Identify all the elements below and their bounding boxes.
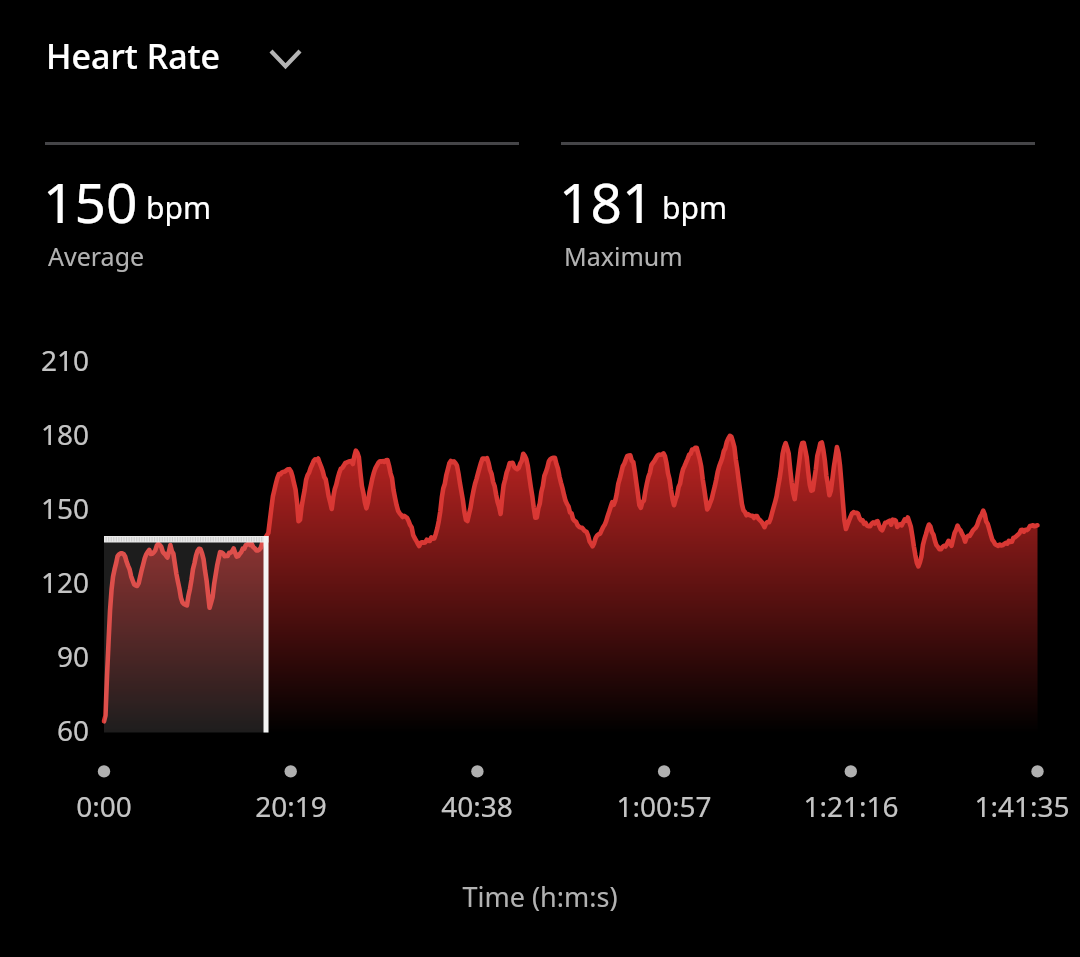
staticText: Maximum xyxy=(564,239,683,273)
staticText: 180 xyxy=(0,415,89,957)
staticText: 60 xyxy=(0,711,89,957)
staticText: 40:38 xyxy=(347,787,607,957)
staticText: 1:00:57 xyxy=(534,787,794,957)
other: Change metric xyxy=(261,42,309,78)
staticText: 20:19 xyxy=(161,787,421,957)
staticText: Average xyxy=(48,239,145,273)
staticText: 150 xyxy=(0,489,89,957)
staticText: Heart Rate xyxy=(46,33,221,77)
staticText: bpm xyxy=(146,187,211,228)
staticText: 90 xyxy=(0,637,89,957)
staticText: 0:00 xyxy=(0,787,234,957)
staticText: 1:21:16 xyxy=(721,787,981,957)
button[interactable]: Heart Rate xyxy=(45,34,307,78)
staticText: 1:41:35 xyxy=(892,787,1080,957)
staticText: 210 xyxy=(0,341,89,957)
staticText: 120 xyxy=(0,563,89,957)
staticText: Time (h:m:s) xyxy=(0,878,1080,957)
staticText: 181 xyxy=(559,164,654,239)
button[interactable]: 150 xyxy=(45,130,519,275)
staticText: 150 xyxy=(43,164,138,239)
button[interactable]: Adjust selection range xyxy=(253,536,285,733)
staticText: bpm xyxy=(662,187,727,228)
button[interactable]: 181 xyxy=(561,130,1035,275)
